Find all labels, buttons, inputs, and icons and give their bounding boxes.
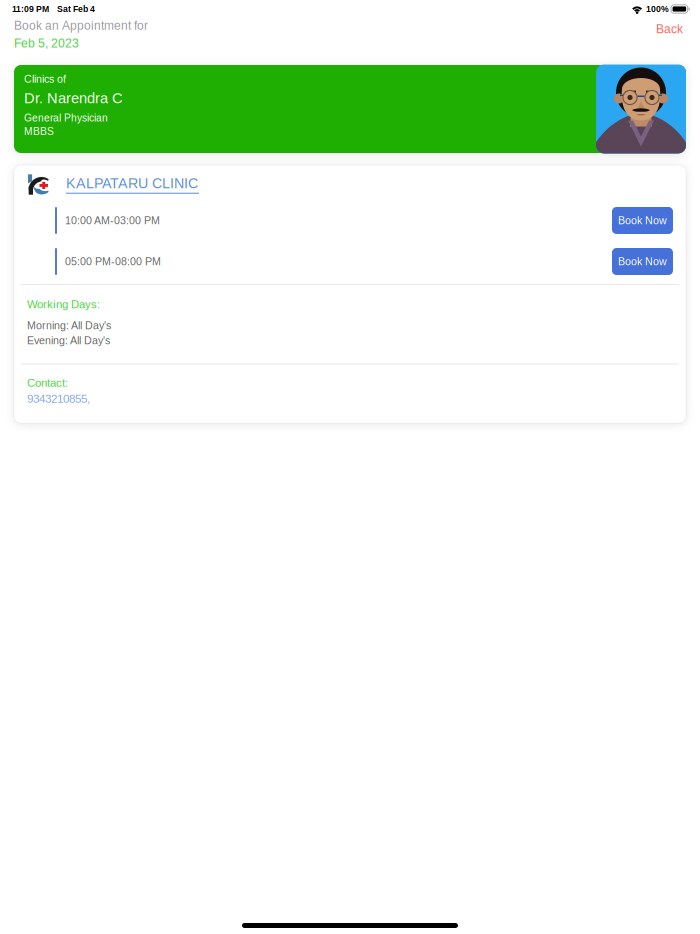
staticText: Working Days: — [27, 298, 100, 311]
staticText: 100% — [646, 4, 669, 14]
button[interactable]: Book Now — [612, 248, 673, 275]
staticText: KALPATARU CLINIC — [66, 175, 198, 191]
button[interactable]: KALPATARU CLINIC — [66, 175, 199, 194]
staticText: Morning: All Day's — [27, 320, 111, 332]
staticText: 9343210855, — [27, 392, 90, 405]
staticText: Sat Feb 4 — [57, 4, 95, 14]
staticText: Book Now — [618, 255, 667, 267]
staticText: Clinics of — [24, 73, 66, 85]
staticText: 05:00 PM-08:00 PM — [65, 255, 161, 267]
staticText: Book Now — [618, 214, 667, 226]
staticText: Contact: — [27, 376, 68, 389]
button[interactable]: Book Now — [612, 207, 673, 234]
button[interactable]: Back — [648, 18, 691, 40]
staticText: Book an Appointment for — [14, 19, 148, 32]
staticText: MBBS — [24, 126, 54, 137]
staticText: Back — [656, 22, 683, 36]
staticText: Feb 5, 2023 — [14, 36, 79, 50]
staticText: 11:09 PM — [12, 4, 49, 14]
staticText: Dr. Narendra C — [24, 90, 123, 106]
button[interactable]: 9343210855, — [27, 392, 90, 405]
staticText: General Physician — [24, 112, 108, 124]
staticText: Evening: All Day's — [27, 335, 110, 346]
staticText: 10:00 AM-03:00 PM — [65, 214, 160, 226]
